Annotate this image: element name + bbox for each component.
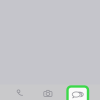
- button[interactable]: Chats: [67, 86, 88, 100]
- button[interactable]: Calls: [7, 85, 33, 100]
- button[interactable]: Camera: [35, 85, 61, 100]
